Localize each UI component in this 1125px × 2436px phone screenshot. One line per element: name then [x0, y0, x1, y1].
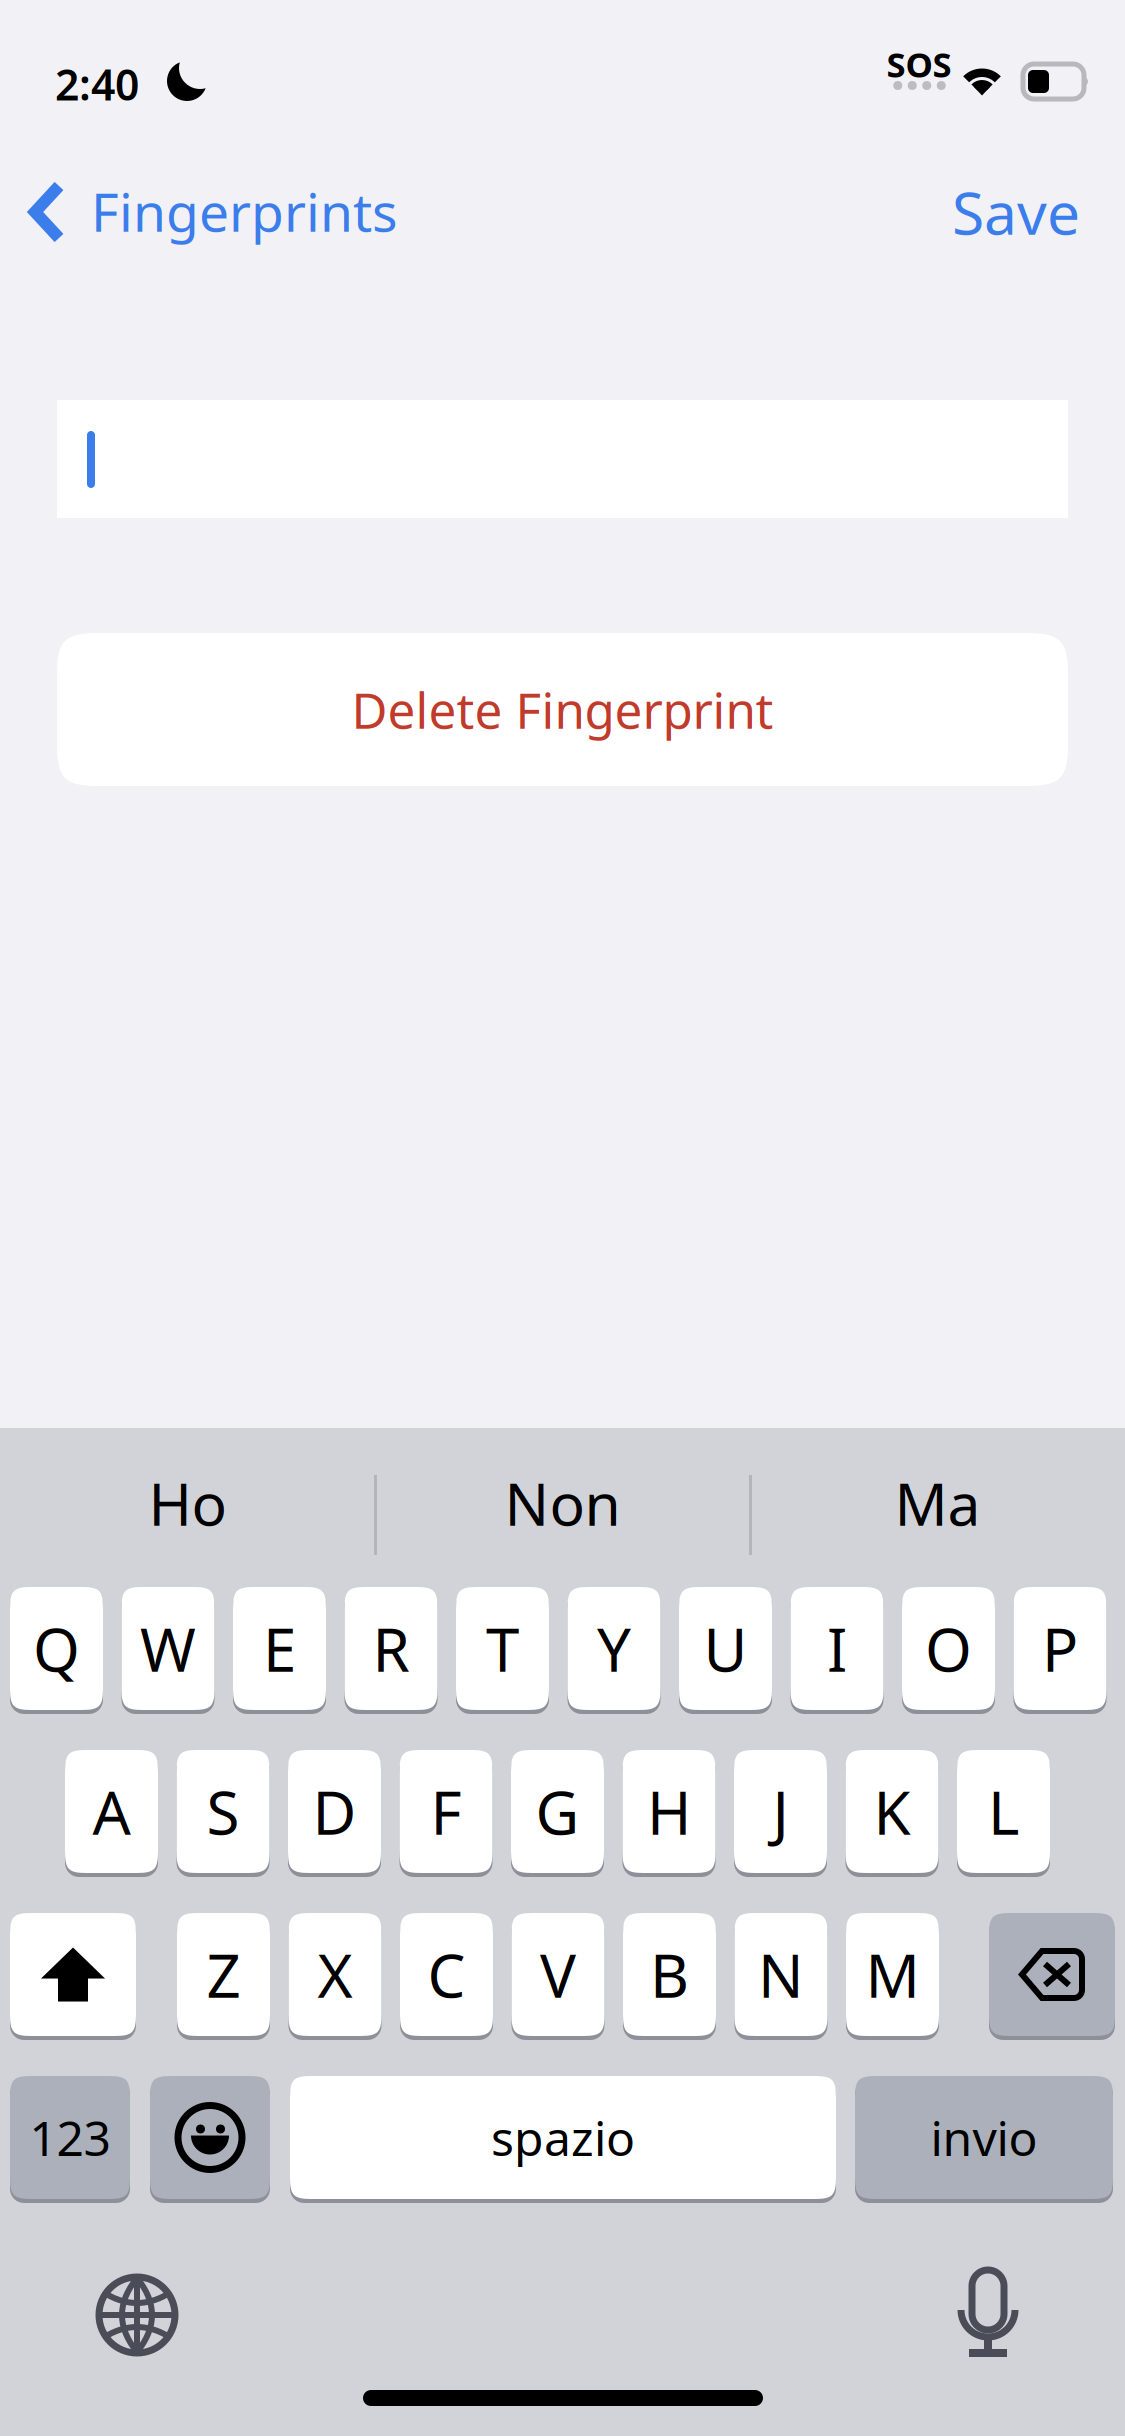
- button[interactable]: Shift: [10, 1913, 136, 2040]
- staticText: D: [312, 1772, 356, 1851]
- button[interactable]: T: [456, 1587, 549, 1714]
- staticText: B: [650, 1935, 689, 2014]
- button[interactable]: Non: [375, 1428, 750, 1578]
- button[interactable]: invio: [855, 2076, 1113, 2203]
- button[interactable]: Emoji: [150, 2076, 270, 2203]
- button[interactable]: X: [288, 1913, 381, 2040]
- button[interactable]: D: [288, 1750, 381, 1877]
- staticText: Q: [33, 1609, 80, 1688]
- button[interactable]: N: [734, 1913, 827, 2040]
- staticText: Fingerprints: [91, 176, 398, 246]
- button[interactable]: Dictation: [956, 2270, 1020, 2358]
- staticText: spazio: [491, 2106, 635, 2169]
- staticText: SOS: [886, 41, 951, 87]
- button[interactable]: I: [790, 1587, 883, 1714]
- button[interactable]: Delete Fingerprint: [57, 633, 1068, 786]
- button[interactable]: F: [399, 1750, 492, 1877]
- button[interactable]: R: [344, 1587, 437, 1714]
- staticText: H: [647, 1772, 691, 1851]
- button[interactable]: Z: [177, 1913, 270, 2040]
- button[interactable]: K: [845, 1750, 938, 1877]
- staticText: I: [827, 1609, 847, 1688]
- staticText: Ma: [894, 1464, 980, 1542]
- button[interactable]: M: [846, 1913, 939, 2040]
- staticText: F: [430, 1772, 461, 1851]
- staticText: J: [772, 1772, 788, 1851]
- button[interactable]: O: [902, 1587, 995, 1714]
- staticText: G: [535, 1772, 579, 1851]
- staticText: N: [758, 1935, 804, 2014]
- button[interactable]: C: [400, 1913, 493, 2040]
- button[interactable]: Save: [865, 162, 1095, 262]
- button[interactable]: W: [121, 1587, 214, 1714]
- button[interactable]: L: [957, 1750, 1050, 1877]
- staticText: L: [988, 1772, 1019, 1851]
- staticText: Non: [504, 1464, 620, 1542]
- button[interactable]: E: [233, 1587, 326, 1714]
- staticText: Delete Fingerprint: [351, 677, 773, 742]
- button[interactable]: B: [623, 1913, 716, 2040]
- staticText: W: [140, 1609, 196, 1688]
- staticText: S: [206, 1772, 239, 1851]
- staticText: E: [263, 1609, 296, 1688]
- staticText: A: [92, 1772, 130, 1851]
- button[interactable]: U: [679, 1587, 772, 1714]
- staticText: T: [486, 1609, 519, 1688]
- button[interactable]: Ho: [0, 1428, 375, 1578]
- staticText: R: [372, 1609, 409, 1688]
- staticText: Save: [952, 173, 1080, 251]
- button[interactable]: J: [734, 1750, 827, 1877]
- button[interactable]: spazio: [290, 2076, 836, 2203]
- staticText: invio: [930, 2106, 1037, 2169]
- staticText: O: [925, 1609, 972, 1688]
- button[interactable]: Y: [567, 1587, 660, 1714]
- staticText: C: [427, 1935, 465, 2014]
- staticText: M: [865, 1935, 919, 2014]
- staticText: X: [317, 1935, 352, 2014]
- button[interactable]: G: [511, 1750, 604, 1877]
- staticText: P: [1042, 1609, 1078, 1688]
- button[interactable]: Fingerprints: [29, 162, 601, 262]
- button[interactable]: P: [1013, 1587, 1106, 1714]
- staticText: Ho: [148, 1464, 226, 1542]
- button[interactable]: Next keyboard: [99, 2277, 175, 2353]
- staticText: Y: [597, 1609, 631, 1688]
- staticText: V: [540, 1935, 576, 2014]
- button[interactable]: Delete: [989, 1913, 1115, 2040]
- staticText: U: [703, 1609, 747, 1688]
- staticText: 2:40: [55, 56, 139, 112]
- staticText: 123: [29, 2106, 110, 2169]
- button[interactable]: Q: [10, 1587, 103, 1714]
- button[interactable]: V: [511, 1913, 604, 2040]
- button[interactable]: Ma: [750, 1428, 1125, 1578]
- button[interactable]: S: [176, 1750, 269, 1877]
- button[interactable]: H: [622, 1750, 715, 1877]
- button[interactable]: A: [65, 1750, 158, 1877]
- staticText: Z: [206, 1935, 240, 2014]
- button[interactable]: 123: [10, 2076, 130, 2203]
- staticText: K: [873, 1772, 910, 1851]
